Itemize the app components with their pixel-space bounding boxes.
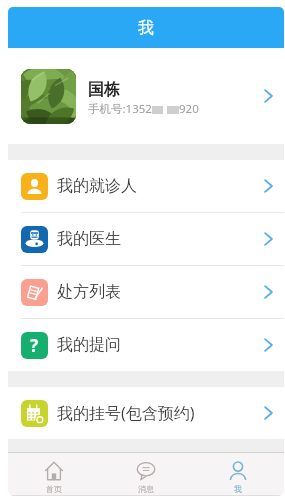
staticText: 920	[179, 101, 199, 117]
staticText: 首页	[46, 484, 62, 494]
button[interactable]: 我	[192, 453, 284, 495]
button[interactable]: 我的就诊人	[8, 160, 284, 212]
staticText: 我的就诊人	[57, 176, 137, 196]
staticText: 我的医生	[57, 229, 121, 249]
staticText: 我	[234, 484, 242, 494]
button[interactable]: 我的医生	[8, 213, 284, 265]
button[interactable]: 首页	[8, 453, 100, 495]
button[interactable]: 处方列表	[8, 266, 284, 318]
staticText: ?	[30, 334, 39, 357]
staticText: 我	[138, 18, 154, 38]
button[interactable]: 我的挂号(包含预约)	[8, 387, 284, 439]
button[interactable]: ?	[8, 319, 284, 371]
button[interactable]: 消息	[100, 453, 192, 495]
staticText: 我的提问	[57, 335, 121, 355]
staticText: 处方列表	[57, 282, 121, 302]
staticText: 消息	[138, 484, 154, 494]
staticText: 国栋	[88, 80, 120, 100]
staticText: 我的挂号(包含预约)	[57, 402, 195, 424]
staticText: 手机号:1352	[88, 101, 152, 117]
button[interactable]: 国栋	[8, 48, 284, 144]
